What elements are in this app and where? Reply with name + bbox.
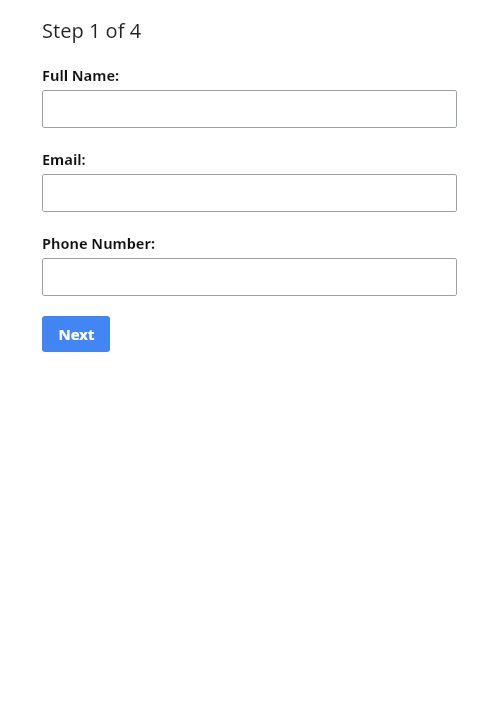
button[interactable] [42,174,457,212]
button[interactable] [42,90,457,128]
staticText: Email: [42,149,86,169]
button[interactable]: Next [42,316,110,352]
staticText: Step 1 of 4 [42,17,142,44]
button[interactable] [42,258,457,296]
staticText: Full Name: [42,65,120,85]
staticText: Next [58,324,95,344]
staticText: Phone Number: [42,233,156,253]
